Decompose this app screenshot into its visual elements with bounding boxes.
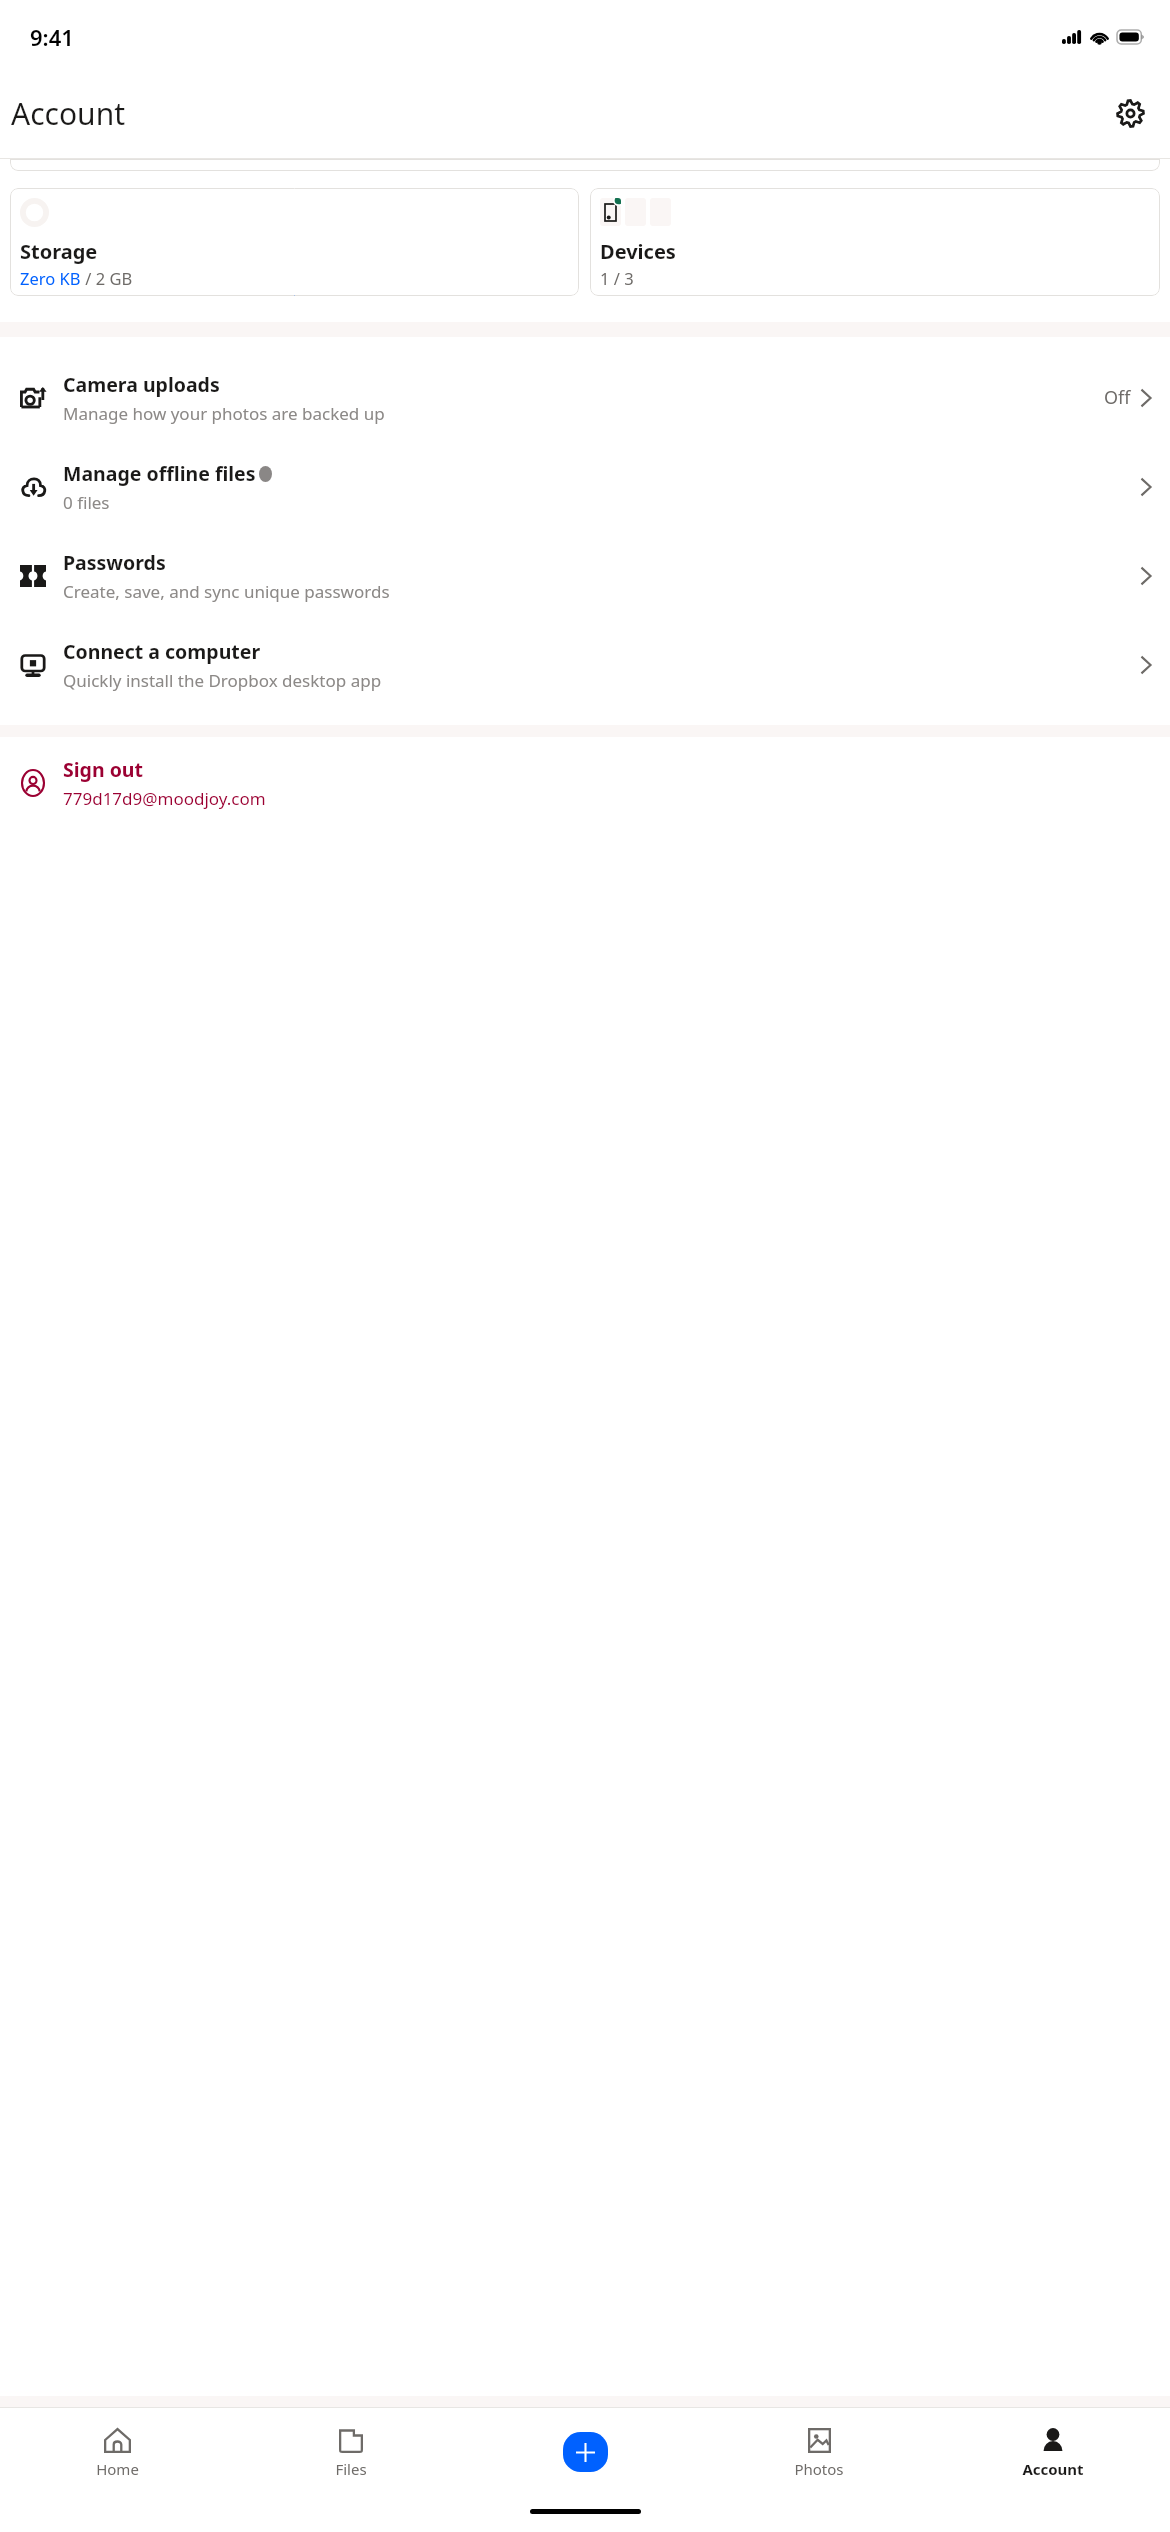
staticText: Home <box>96 2459 139 2479</box>
staticText: Quickly install the Dropbox desktop app <box>63 669 382 692</box>
staticText: Passwords <box>63 549 166 576</box>
staticText: Photos <box>794 2459 844 2479</box>
staticText: Account <box>11 93 126 134</box>
button[interactable]: Storage <box>10 188 579 296</box>
button[interactable]: Sign out <box>0 737 1170 829</box>
staticText: Zero KB <box>20 267 81 289</box>
staticText: 9:41 <box>30 22 74 52</box>
staticText: Manage how your photos are backed up <box>63 402 385 425</box>
staticText: Camera uploads <box>63 371 220 398</box>
staticText: Connect a computer <box>63 638 261 665</box>
button[interactable]: Home <box>0 2408 234 2496</box>
staticText: Create, save, and sync unique passwords <box>63 580 390 603</box>
staticText: Storage <box>20 238 98 265</box>
staticText: Manage offline files <box>63 460 256 487</box>
button[interactable]: Camera uploads <box>0 353 1170 442</box>
button[interactable]: Settings <box>1106 89 1154 137</box>
staticText: Files <box>335 2459 367 2479</box>
staticText: Devices <box>600 238 676 265</box>
button[interactable]: Files <box>234 2408 468 2496</box>
staticText: 779d17d9@moodjoy.com <box>63 787 266 810</box>
button[interactable]: Devices <box>590 188 1160 296</box>
staticText: Account <box>1022 2459 1084 2479</box>
button[interactable]: Connect a computer <box>0 620 1170 709</box>
staticText: 0 files <box>63 491 110 514</box>
staticText: / 2 GB <box>81 267 133 289</box>
button[interactable]: Create <box>563 2432 608 2472</box>
staticText: Off <box>1104 385 1131 410</box>
staticText: Sign out <box>63 756 143 783</box>
button[interactable]: Photos <box>702 2408 936 2496</box>
button[interactable]: Manage offline files <box>0 442 1170 531</box>
button[interactable]: Passwords <box>0 531 1170 620</box>
staticText: 1 / 3 <box>600 267 634 289</box>
button[interactable]: Account <box>936 2408 1170 2496</box>
staticText: Upgrade <box>256 295 333 296</box>
